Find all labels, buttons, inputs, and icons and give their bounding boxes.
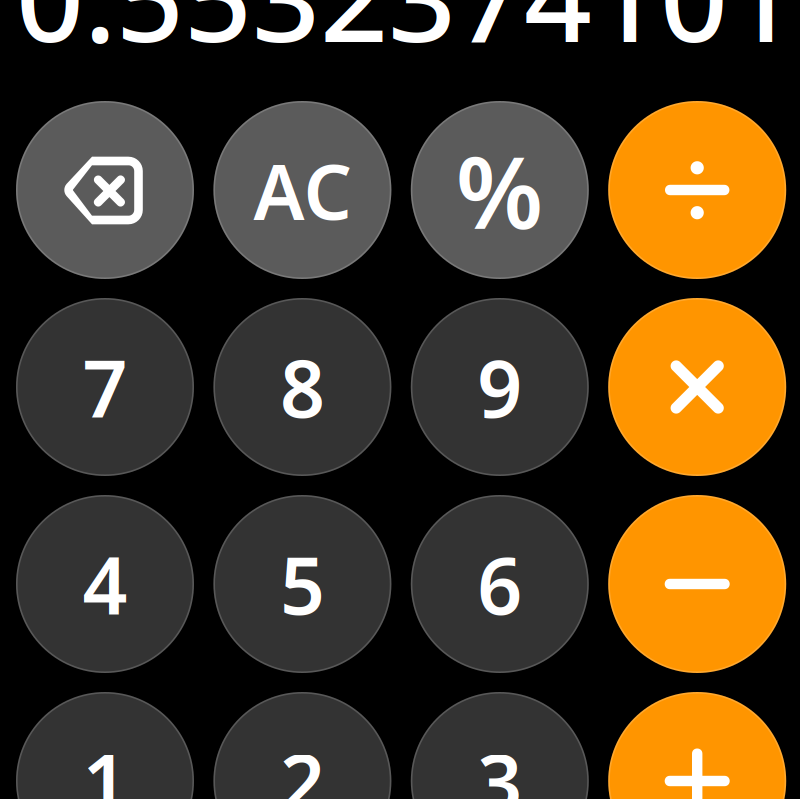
staticText: 6 — [477, 532, 522, 636]
button[interactable]: Delete — [16, 101, 194, 279]
button[interactable]: 3 — [411, 692, 589, 799]
staticText: 5 — [280, 532, 325, 636]
staticText: 4 — [82, 532, 127, 636]
button[interactable]: Multiply — [608, 298, 786, 476]
button[interactable]: 2 — [213, 692, 391, 799]
button[interactable]: 9 — [411, 298, 589, 476]
button[interactable]: 6 — [411, 495, 589, 673]
staticText: 9 — [477, 335, 522, 439]
button[interactable]: 8 — [213, 298, 391, 476]
button[interactable]: % — [411, 101, 589, 279]
staticText: 0.5532374101 — [16, 0, 796, 75]
button[interactable]: Divide — [608, 101, 786, 279]
button[interactable]: 5 — [213, 495, 391, 673]
button[interactable]: Add — [608, 692, 786, 799]
button[interactable]: 1 — [16, 692, 194, 799]
button[interactable]: AC — [213, 101, 391, 279]
staticText: 8 — [280, 335, 325, 439]
staticText: 1 — [82, 729, 127, 799]
staticText: 3 — [477, 729, 522, 799]
staticText: 2 — [280, 729, 325, 799]
staticText: AC — [253, 139, 351, 240]
staticText: % — [456, 124, 544, 256]
button[interactable]: 7 — [16, 298, 194, 476]
button[interactable]: Subtract — [608, 495, 786, 673]
staticText: 7 — [82, 335, 127, 439]
button[interactable]: 4 — [16, 495, 194, 673]
